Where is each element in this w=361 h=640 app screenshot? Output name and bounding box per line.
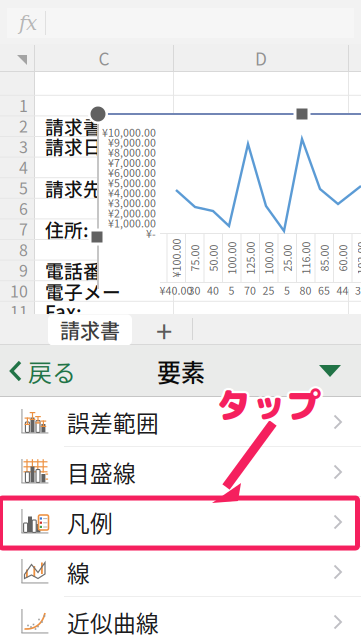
staticText: 5 [284,282,290,298]
staticText: 50.00 [199,250,226,266]
button[interactable]: 誤差範囲 [0,397,361,447]
staticText: タップ [214,381,319,429]
staticText: 100.00 [215,250,248,266]
staticText: 116.00 [289,250,322,266]
staticText: 60.00 [329,250,356,266]
staticText: ¥2,000.00 [108,205,156,220]
staticText: 電子メー [45,277,121,304]
staticText: タップ [216,381,321,429]
staticText: 凡例 [67,506,113,538]
staticText: 請求書 [60,315,120,344]
staticText: 5 [228,282,234,298]
staticText: タップ [215,382,320,431]
staticText: 102.00 [344,250,361,266]
staticText: 電話番号 [45,256,121,283]
staticText: 近似曲線 [67,606,159,638]
staticText: 5 [19,176,28,199]
staticText: 目盛線 [67,456,136,488]
staticText: 住所: [45,215,89,242]
staticText: 75.00 [181,250,208,266]
staticText: 30 [188,282,200,298]
button[interactable]: 目盛線 [0,447,361,497]
staticText: 8 [19,238,28,261]
staticText: ¥100.00 [156,250,195,266]
button[interactable]: 線 [0,547,361,597]
staticText: タップ [218,379,323,427]
staticText: ¥9,000.00 [108,134,156,150]
button[interactable]: 凡例 [0,497,361,547]
staticText: タップ [215,379,320,427]
button[interactable]: 請求書 [48,314,132,345]
staticText: C [98,45,109,71]
staticText: ¥10,000.00 [102,124,156,140]
staticText: タップ [216,383,321,432]
staticText: 65 [318,282,330,298]
staticText: Fax: [45,297,82,324]
staticText: 請求日: [45,132,108,159]
staticText: 請求書番 [45,112,121,139]
staticText: ¥5,000.00 [108,175,156,190]
staticText: ¥6,000.00 [108,165,156,180]
staticText: 線 [67,556,90,588]
button[interactable]: Add sheet [136,314,192,345]
staticText: ¥1,000.00 [108,215,156,231]
staticText: 1 [19,93,28,117]
staticText: 25 [262,282,274,298]
staticText: ¥3,000.00 [108,195,156,210]
staticText: タップ [216,378,321,427]
staticText: 80 [299,282,311,298]
staticText: 6 [19,196,28,220]
staticText: 85.00 [310,250,337,266]
staticText: ¥40.00 [159,282,192,298]
staticText: 9 [19,258,28,281]
staticText: 請求先: [45,174,108,201]
button[interactable]: 近似曲線 [0,597,361,640]
staticText: 11 [10,299,28,323]
button[interactable]: Collapse panel [300,348,360,394]
staticText: D [255,45,267,71]
staticText: 10 [10,279,28,302]
staticText: 2 [19,114,28,137]
staticText: ¥4,000.00 [108,185,156,200]
staticText: 誤差範囲 [67,406,159,438]
staticText: 100.00 [252,250,285,266]
staticText: タップ [218,382,323,431]
staticText: 70 [244,282,256,298]
staticText: ¥- [146,225,156,241]
staticText: 40 [207,282,219,298]
staticText: 125.00 [233,250,266,266]
staticText: 7 [19,217,28,240]
staticText: ¥8,000.00 [108,144,156,160]
staticText: fx [19,11,37,35]
staticText: 4 [19,155,28,178]
staticText: 39 [355,282,361,298]
staticText: 要素 [157,354,205,388]
staticText: 3 [19,135,28,158]
staticText: タップ [219,381,324,429]
staticText: 戻る [28,354,76,388]
button[interactable]: 戻る [8,348,98,394]
staticText: + [156,309,172,351]
staticText: ¥7,000.00 [108,155,156,170]
staticText: 25.00 [273,250,300,266]
staticText: 44 [336,282,348,298]
